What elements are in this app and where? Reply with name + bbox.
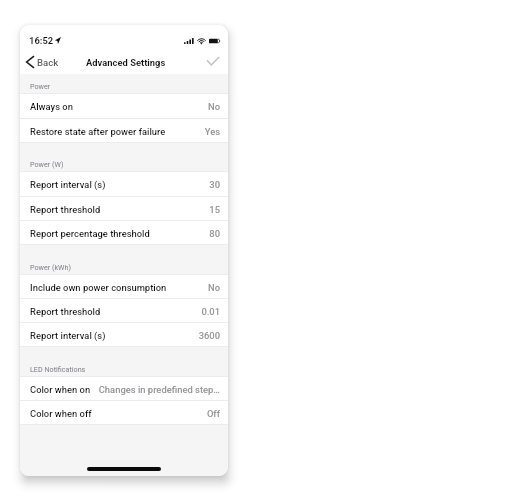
staticText: LED Notifications (30, 365, 86, 373)
staticText: Report percentage threshold (30, 228, 150, 239)
staticText: 15 (209, 204, 220, 215)
staticText: 3600 (198, 330, 220, 341)
button[interactable]: Confirm (204, 52, 222, 70)
staticText: Color when on (30, 384, 91, 395)
staticText: Power (kWh) (30, 263, 71, 271)
staticText: Yes (204, 126, 220, 137)
staticText: Color when off (30, 408, 92, 419)
staticText: Include own power consumption (30, 282, 167, 293)
staticText: Report threshold (30, 306, 101, 317)
button[interactable]: Back (26, 50, 228, 74)
button[interactable]: Restore state after power failure (20, 119, 228, 143)
button[interactable]: Report threshold (20, 299, 228, 323)
staticText: 16:52 (29, 35, 54, 46)
staticText: Report interval (s) (30, 330, 106, 341)
staticText: Changes in predefined step… (98, 384, 220, 395)
staticText: 80 (209, 228, 220, 239)
staticText: 30 (209, 179, 220, 190)
button[interactable]: Always on (20, 94, 228, 119)
staticText: Back (37, 57, 59, 68)
button[interactable]: Report percentage threshold (20, 221, 228, 245)
button[interactable]: Report interval (s) (20, 323, 228, 347)
button[interactable]: Report interval (s) (20, 172, 228, 197)
staticText: Always on (30, 101, 73, 112)
staticText: Restore state after power failure (30, 126, 166, 137)
staticText: Report threshold (30, 204, 101, 215)
button[interactable]: Report threshold (20, 197, 228, 221)
staticText: Power (30, 82, 51, 90)
button[interactable]: Color when on (20, 377, 228, 401)
staticText: Advanced Settings (86, 57, 166, 68)
staticText: 0.01 (201, 306, 220, 317)
staticText: Report interval (s) (30, 179, 106, 190)
staticText: No (208, 282, 220, 293)
staticText: No (208, 101, 220, 112)
staticText: Off (206, 408, 220, 419)
button[interactable]: Include own power consumption (20, 275, 228, 299)
button[interactable]: Color when off (20, 401, 228, 425)
staticText: Power (W) (30, 160, 64, 168)
